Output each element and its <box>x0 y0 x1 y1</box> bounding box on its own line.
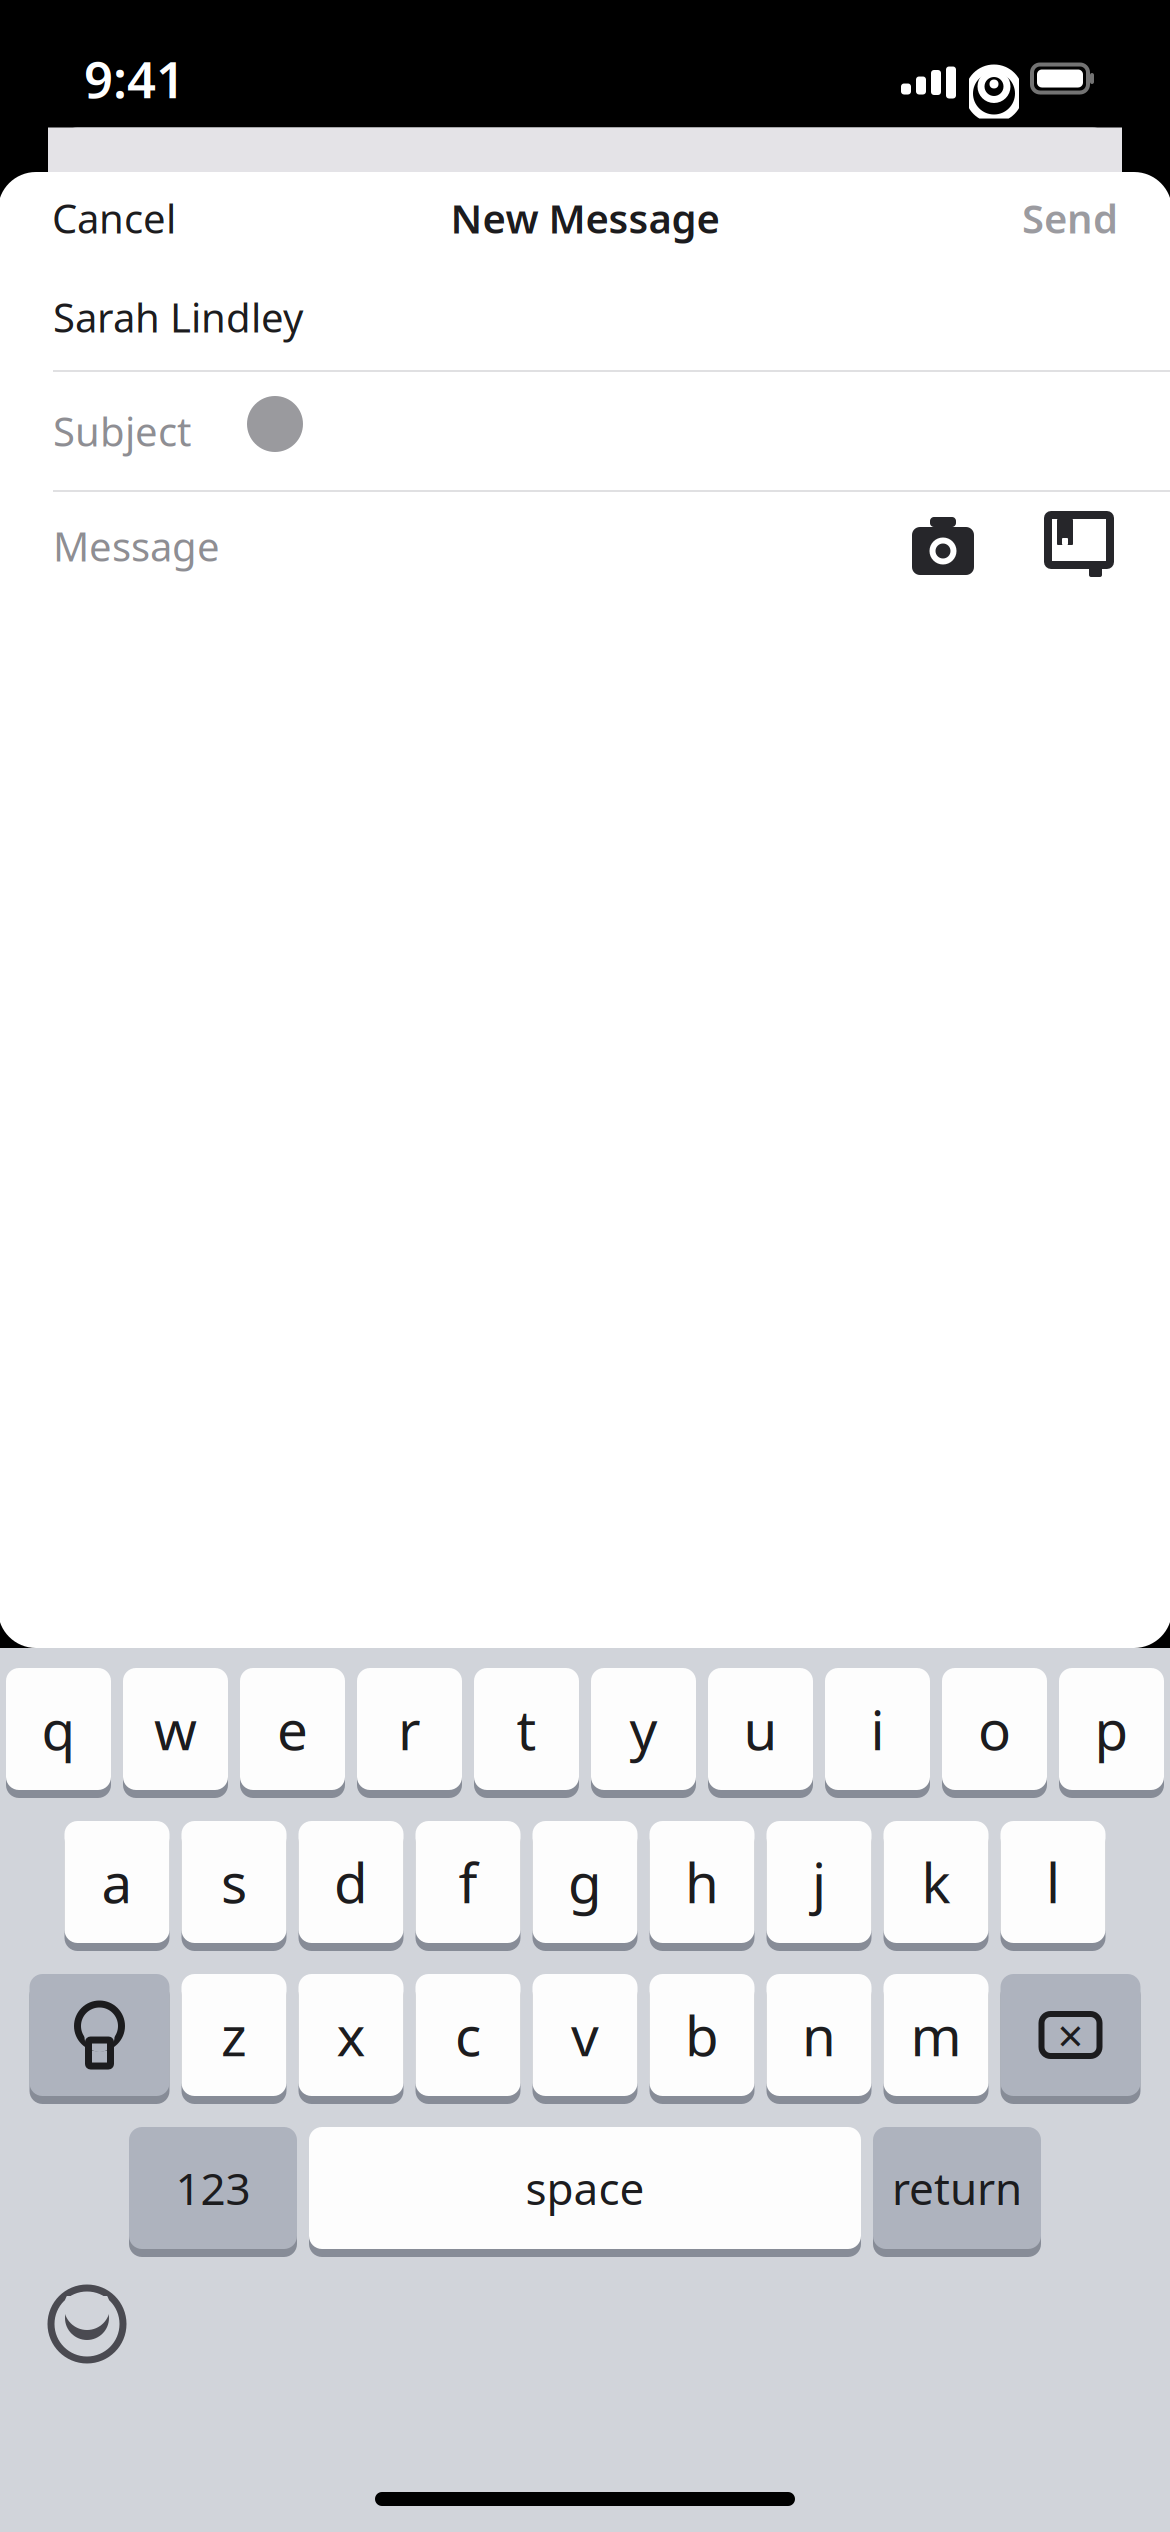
button[interactable]: Send <box>1010 177 1130 258</box>
staticText: x <box>336 1999 365 2071</box>
staticText: return <box>892 2159 1022 2217</box>
staticText: s <box>221 1846 247 1918</box>
staticText: o <box>978 1693 1011 1765</box>
button[interactable]: m <box>883 1976 988 2102</box>
staticText: w <box>154 1693 197 1765</box>
staticText: b <box>685 1999 719 2071</box>
staticText: n <box>802 1999 836 2071</box>
staticText: e <box>277 1693 308 1765</box>
button[interactable]: x <box>298 1976 403 2102</box>
staticText: Send <box>1022 191 1118 244</box>
staticText: a <box>101 1846 132 1918</box>
button[interactable]: t <box>474 1670 579 1796</box>
button[interactable]: j <box>766 1823 871 1949</box>
button[interactable]: f <box>415 1823 520 1949</box>
staticText: h <box>685 1846 719 1918</box>
button[interactable]: return <box>873 2129 1041 2255</box>
staticText: Subject <box>53 404 191 457</box>
staticText: m <box>910 1999 961 2071</box>
button[interactable]: c <box>415 1976 520 2102</box>
button[interactable]: q <box>6 1670 111 1796</box>
button[interactable]: k <box>883 1823 988 1949</box>
staticText: New Message <box>450 191 719 244</box>
button[interactable]: l <box>1000 1823 1105 1949</box>
button[interactable]: g <box>532 1823 637 1949</box>
staticText: y <box>629 1693 657 1765</box>
staticText: r <box>398 1693 421 1765</box>
button[interactable]: v <box>532 1976 637 2102</box>
button[interactable]: Emoji <box>28 2265 146 2383</box>
staticText: q <box>41 1693 75 1765</box>
staticText: l <box>1046 1846 1060 1918</box>
staticText: 123 <box>175 2159 250 2217</box>
button[interactable]: Cancel <box>40 177 188 258</box>
button[interactable]: i <box>825 1670 930 1796</box>
staticText: d <box>334 1846 368 1918</box>
button[interactable]: n <box>766 1976 871 2102</box>
staticText: v <box>571 1999 599 2071</box>
staticText: × <box>1057 2005 1083 2065</box>
button[interactable]: Take photo <box>898 517 988 575</box>
staticText: f <box>458 1846 477 1918</box>
button[interactable]: o <box>942 1670 1047 1796</box>
button[interactable]: Shift <box>29 1976 169 2102</box>
button[interactable]: 123 <box>129 2129 297 2255</box>
button[interactable]: z <box>181 1976 286 2102</box>
staticText: t <box>516 1693 536 1765</box>
staticText: Cancel <box>52 191 176 244</box>
button[interactable]: b <box>649 1976 754 2102</box>
button[interactable]: p <box>1059 1670 1164 1796</box>
staticText: g <box>568 1846 602 1918</box>
button[interactable]: h <box>649 1823 754 1949</box>
button[interactable]: u <box>708 1670 813 1796</box>
staticText: space <box>525 2159 644 2217</box>
staticText: 9:41 <box>84 45 185 112</box>
button[interactable]: a <box>64 1823 169 1949</box>
button[interactable]: space <box>309 2129 861 2255</box>
staticText: Sarah Lindley <box>53 290 303 343</box>
button[interactable]: Delete <box>1000 1976 1140 2102</box>
button[interactable]: e <box>240 1670 345 1796</box>
staticText: z <box>221 1999 247 2071</box>
staticText: k <box>921 1846 950 1918</box>
staticText: p <box>1094 1693 1128 1765</box>
staticText: i <box>870 1693 884 1765</box>
button[interactable]: s <box>181 1823 286 1949</box>
staticText: u <box>743 1693 777 1765</box>
staticText: j <box>812 1846 826 1918</box>
button[interactable]: w <box>123 1670 228 1796</box>
button[interactable]: y <box>591 1670 696 1796</box>
button[interactable]: d <box>298 1823 403 1949</box>
staticText: c <box>455 1999 481 2071</box>
button[interactable]: Digital Touch <box>1034 515 1124 577</box>
staticText: Message <box>53 519 220 572</box>
button[interactable]: r <box>357 1670 462 1796</box>
